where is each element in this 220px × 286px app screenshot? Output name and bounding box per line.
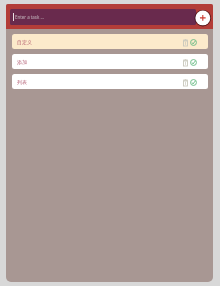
staticText: 列表: [17, 79, 27, 85]
button[interactable]: Delete task: [182, 56, 189, 68]
button[interactable]: Mark done: [189, 56, 198, 68]
staticText: 添加: [17, 59, 27, 65]
button[interactable]: Delete task: [182, 76, 189, 88]
button[interactable]: 自定义: [12, 34, 208, 49]
staticText: Enter a task ...: [15, 14, 44, 20]
button[interactable]: Add task: [192, 8, 212, 28]
button[interactable]: 列表: [12, 74, 208, 89]
button[interactable]: 添加: [12, 54, 208, 69]
button[interactable]: Delete task: [182, 36, 189, 48]
staticText: 自定义: [17, 39, 32, 45]
button[interactable]: Mark done: [189, 76, 198, 88]
button[interactable]: Mark done: [189, 36, 198, 48]
button[interactable]: Enter a task ...: [10, 9, 196, 25]
